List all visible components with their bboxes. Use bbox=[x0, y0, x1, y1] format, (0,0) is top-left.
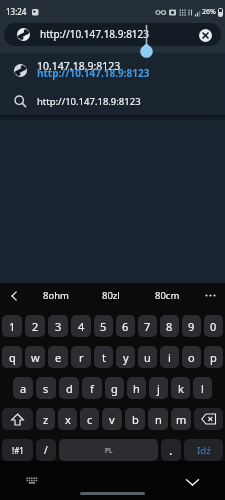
staticText: 80zl bbox=[102, 289, 120, 302]
button[interactable]: 0 bbox=[204, 315, 223, 337]
button[interactable]: p bbox=[204, 346, 223, 368]
staticText: 7 bbox=[144, 319, 151, 334]
button[interactable]: 4 bbox=[71, 315, 91, 337]
staticText: !#1 bbox=[12, 445, 24, 456]
staticText: i bbox=[168, 350, 171, 365]
button[interactable]: j bbox=[149, 377, 168, 399]
staticText: 9 bbox=[188, 319, 195, 334]
button[interactable]: n bbox=[148, 408, 168, 430]
staticText: r bbox=[79, 350, 84, 365]
button[interactable]: !#1 bbox=[2, 439, 33, 461]
staticText: p bbox=[210, 350, 217, 365]
button[interactable]: c bbox=[80, 408, 99, 430]
staticText: 3 bbox=[55, 319, 62, 334]
staticText: y bbox=[123, 350, 129, 365]
button[interactable]: s bbox=[36, 377, 56, 399]
button[interactable]: http://10.147.18.9:8123 bbox=[3, 88, 222, 115]
button[interactable]: v bbox=[102, 408, 122, 430]
button[interactable] bbox=[0, 283, 28, 308]
button[interactable]: 3 bbox=[48, 315, 68, 337]
staticText: 26% bbox=[202, 7, 216, 17]
button[interactable]: 1 bbox=[2, 315, 22, 337]
staticText: m bbox=[176, 412, 187, 427]
staticText: l bbox=[201, 381, 204, 396]
button[interactable]: i bbox=[160, 346, 179, 368]
button[interactable]: 8 bbox=[160, 315, 179, 337]
button[interactable]: w bbox=[25, 346, 45, 368]
staticText: g bbox=[111, 381, 118, 396]
button[interactable]: y bbox=[116, 346, 135, 368]
button[interactable]: 2 bbox=[25, 315, 45, 337]
button[interactable] bbox=[195, 283, 225, 308]
button[interactable] bbox=[22, 473, 42, 489]
staticText: http://10.147.18.9:8123 bbox=[37, 66, 150, 80]
button[interactable]: 7 bbox=[138, 315, 157, 337]
staticText: . bbox=[169, 441, 173, 459]
button[interactable]: h bbox=[127, 377, 146, 399]
staticText: x bbox=[65, 412, 71, 427]
staticText: j bbox=[157, 381, 160, 396]
staticText: z bbox=[43, 412, 49, 427]
button[interactable]: f bbox=[82, 377, 102, 399]
button[interactable]: m bbox=[171, 408, 191, 430]
button[interactable]: b bbox=[125, 408, 145, 430]
button[interactable]: PL bbox=[59, 439, 158, 461]
button[interactable]: 8ohm bbox=[28, 283, 83, 308]
staticText: v bbox=[109, 412, 115, 427]
staticText: o bbox=[188, 350, 195, 365]
button[interactable]: l bbox=[193, 377, 212, 399]
button[interactable]: t bbox=[94, 346, 113, 368]
staticText: t bbox=[102, 350, 106, 365]
button[interactable]: r bbox=[71, 346, 91, 368]
button[interactable]: 6 bbox=[116, 315, 135, 337]
staticText: Idź bbox=[197, 444, 211, 457]
staticText: w bbox=[31, 350, 40, 365]
button[interactable]: 10.147.18.9:8123 bbox=[3, 53, 222, 88]
button[interactable]: g bbox=[105, 377, 124, 399]
staticText: http://10.147.18.9:8123 bbox=[40, 27, 150, 41]
staticText: q bbox=[9, 350, 16, 365]
button[interactable] bbox=[195, 25, 215, 45]
staticText: 0 bbox=[210, 319, 217, 334]
button[interactable]: q bbox=[2, 346, 22, 368]
staticText: 6 bbox=[122, 319, 129, 334]
button[interactable]: 5 bbox=[94, 315, 113, 337]
button[interactable]: a bbox=[13, 377, 33, 399]
button[interactable]: 9 bbox=[182, 315, 201, 337]
staticText: b bbox=[132, 412, 139, 427]
staticText: k bbox=[178, 381, 184, 396]
staticText: a bbox=[20, 381, 27, 396]
staticText: c bbox=[87, 412, 93, 427]
button[interactable]: u bbox=[138, 346, 157, 368]
staticText: 13:24 bbox=[6, 6, 27, 17]
button[interactable]: Idź bbox=[184, 439, 223, 461]
button[interactable]: http://10.147.18.9:8123 bbox=[4, 23, 221, 46]
staticText: s bbox=[43, 381, 49, 396]
staticText: 5 bbox=[100, 319, 107, 334]
staticText: u bbox=[144, 350, 151, 365]
button[interactable]: x bbox=[58, 408, 77, 430]
staticText: 10.147.18.9:8123 bbox=[37, 59, 121, 73]
button[interactable]: e bbox=[48, 346, 68, 368]
staticText: 80cm bbox=[155, 289, 180, 302]
staticText: PL bbox=[105, 446, 113, 455]
staticText: http://10.147.18.9:8123 bbox=[37, 95, 141, 108]
button[interactable] bbox=[194, 408, 223, 430]
button[interactable]: . bbox=[161, 439, 181, 461]
button[interactable]: z bbox=[36, 408, 55, 430]
button[interactable] bbox=[182, 475, 202, 489]
button[interactable]: 80cm bbox=[139, 283, 195, 308]
button[interactable] bbox=[80, 492, 145, 495]
staticText: f bbox=[90, 381, 94, 396]
button[interactable]: / bbox=[36, 439, 56, 461]
button[interactable]: 80zl bbox=[83, 283, 139, 308]
staticText: 8 bbox=[166, 319, 173, 334]
button[interactable] bbox=[2, 408, 33, 430]
staticText: h bbox=[133, 381, 140, 396]
staticText: n bbox=[155, 412, 162, 427]
button[interactable]: d bbox=[59, 377, 79, 399]
button[interactable]: k bbox=[171, 377, 190, 399]
button[interactable]: o bbox=[182, 346, 201, 368]
staticText: 4 bbox=[78, 319, 85, 334]
staticText: 2 bbox=[32, 319, 39, 334]
